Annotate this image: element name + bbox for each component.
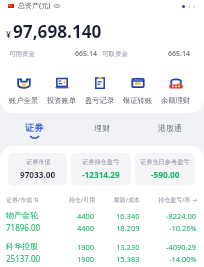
staticText: 科华控股 [6, 241, 38, 251]
staticText: -12314.29 [82, 169, 120, 180]
staticText: 港股通 [158, 123, 182, 133]
staticText: 证券市值 [26, 158, 51, 166]
staticText: 投资账单 [47, 96, 77, 105]
staticText: 13.230 [116, 242, 140, 252]
staticText: 4400 [77, 223, 95, 233]
staticText: 1900 [77, 254, 95, 264]
button[interactable]: 证券 [0, 113, 68, 145]
staticText: 持仓盈亏/率 → [140, 196, 197, 204]
button[interactable]: 物产金轮 [0, 210, 204, 233]
staticText: 25137.00 [6, 253, 41, 264]
staticText: 97033.00 [20, 169, 56, 180]
button[interactable]: 盈亏记录 [81, 76, 119, 105]
button[interactable]: 余额理财 [157, 76, 195, 105]
staticText: 15.383 [116, 254, 140, 264]
staticText: 理财 [94, 123, 110, 133]
staticText: 97,698.140 [13, 20, 102, 43]
staticText: 物产金轮 [6, 210, 38, 220]
staticText: 总资产(元) [18, 1, 51, 11]
staticText: 665.14 [168, 49, 190, 59]
staticText: 16.340 [116, 211, 140, 221]
staticText: 盈亏记录 [85, 96, 115, 105]
staticText: 71896.00 [6, 222, 41, 233]
button[interactable]: 证券当日参考盈亏 [135, 153, 195, 186]
staticText: 1900 [77, 242, 95, 252]
staticText: 银证转账 [123, 96, 153, 105]
staticText: -10.26% [169, 223, 197, 233]
staticText: 4400 [77, 211, 95, 221]
button[interactable]: 账户全景 [5, 76, 43, 105]
staticText: -14.00% [169, 254, 197, 264]
staticText: 账户全景 [9, 96, 39, 105]
button[interactable]: 银证转账 [119, 76, 157, 105]
staticText: 最新/成本 [95, 196, 140, 204]
button[interactable]: 证券市值 [8, 153, 67, 186]
staticText: 余额理财 [161, 96, 191, 105]
staticText: 665.14 [75, 49, 97, 59]
staticText: 证券 [25, 122, 44, 134]
button[interactable]: 理财 [68, 113, 136, 145]
staticText: -8224.00 [166, 211, 197, 221]
staticText: 持仓/可用 [51, 196, 95, 204]
staticText: 可用资金 [9, 50, 35, 58]
button[interactable]: 投资账单 [43, 76, 81, 105]
staticText: -590.00 [151, 169, 180, 180]
staticText: ¥ [6, 29, 11, 41]
staticText: 可取资金 [102, 50, 128, 58]
staticText: 证券持仓盈亏 [82, 158, 120, 166]
staticText: 18.209 [116, 223, 140, 233]
button[interactable]: 港股通 [136, 113, 204, 145]
staticText: 证券当日参考盈亏 [140, 158, 190, 166]
staticText: 证券/市值 ⇅ [6, 196, 51, 204]
button[interactable]: 科华控股 [0, 241, 204, 264]
button[interactable]: 证券持仓盈亏 [71, 153, 131, 186]
staticText: -4090.29 [166, 242, 197, 252]
